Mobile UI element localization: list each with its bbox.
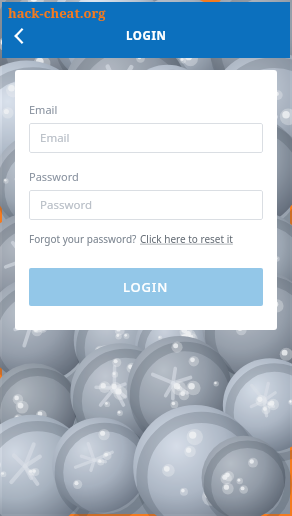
button[interactable]: Email <box>29 123 263 153</box>
staticText: Email <box>29 102 58 117</box>
button[interactable]: Back <box>2 19 36 53</box>
staticText: Click here to reset it <box>140 232 233 246</box>
staticText: Password <box>29 169 79 184</box>
button[interactable]: Forgot your password? <box>29 232 233 246</box>
staticText: Password <box>40 197 93 213</box>
button[interactable]: Password <box>29 190 263 220</box>
staticText: LOGIN <box>123 278 169 296</box>
staticText: Forgot your password? <box>29 232 140 246</box>
staticText: Email <box>40 130 70 146</box>
staticText: hack-cheat.org <box>8 4 106 22</box>
button[interactable]: LOGIN <box>29 268 263 306</box>
staticText: LOGIN <box>126 28 167 44</box>
